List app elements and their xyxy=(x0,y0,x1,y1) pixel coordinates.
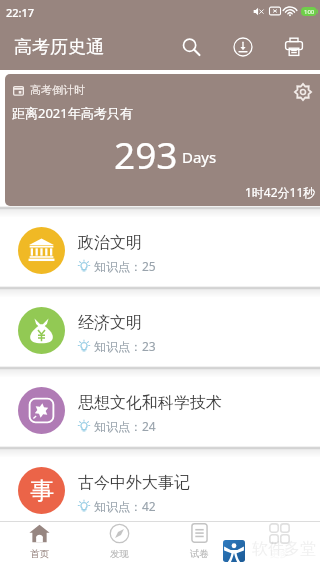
staticText: 软件多堂 xyxy=(252,539,316,559)
staticText: 1时42分11秒 xyxy=(245,184,316,200)
button[interactable]: Download xyxy=(217,24,268,70)
button[interactable]: 发现 xyxy=(79,522,159,566)
button[interactable]: 政治文明 xyxy=(5,217,320,286)
staticText: 知识点：23 xyxy=(94,338,156,354)
button[interactable]: 更多 xyxy=(239,522,319,566)
staticText: 思想文化和科学技术 xyxy=(78,393,222,413)
staticText: 古今中外大事记 xyxy=(78,473,190,493)
button[interactable]: 首页 xyxy=(0,522,79,566)
button[interactable]: 高考倒计时 xyxy=(5,74,320,206)
button[interactable]: Print xyxy=(268,24,319,70)
staticText: 知识点：42 xyxy=(94,498,156,514)
staticText: 高考倒计时 xyxy=(30,83,85,97)
staticText: Days xyxy=(182,147,217,167)
staticText: 试卷 xyxy=(190,548,209,560)
staticText: 首页 xyxy=(30,548,49,560)
staticText: 知识点：25 xyxy=(94,258,156,274)
staticText: 发现 xyxy=(110,548,129,560)
staticText: 事 xyxy=(30,476,54,506)
staticText: 更多 xyxy=(270,548,289,560)
staticText: 高考历史通 xyxy=(14,36,104,59)
staticText: 100 xyxy=(304,8,315,16)
button[interactable]: 经济文明 xyxy=(5,297,320,366)
button[interactable]: Settings xyxy=(285,74,320,110)
staticText: 经济文明 xyxy=(78,313,142,333)
staticText: 政治文明 xyxy=(78,233,142,253)
staticText: 知识点：24 xyxy=(94,418,156,434)
staticText: 距离2021年高考只有 xyxy=(12,104,133,122)
button[interactable]: 事 xyxy=(5,457,320,526)
button[interactable]: 试卷 xyxy=(159,522,239,566)
button[interactable]: 思想文化和科学技术 xyxy=(5,377,320,446)
button[interactable]: Search xyxy=(166,24,217,70)
staticText: 22:17 xyxy=(6,5,35,20)
staticText: 293 xyxy=(114,129,178,179)
